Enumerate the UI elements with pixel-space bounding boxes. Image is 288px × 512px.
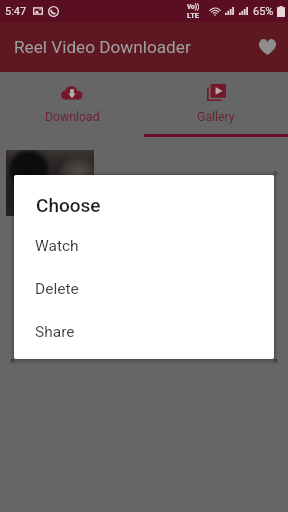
staticText: 65% (253, 5, 274, 18)
staticText: Reel Video Downloader (14, 37, 191, 57)
button[interactable]: Watch (14, 224, 274, 267)
staticText: Gallery (197, 110, 235, 124)
staticText: Choose (36, 194, 101, 216)
staticText: LTE (187, 11, 200, 20)
button[interactable]: Download (0, 72, 144, 137)
staticText: 5:47 (5, 5, 27, 18)
staticText: Watch (35, 237, 79, 255)
button[interactable]: Gallery (144, 72, 288, 137)
staticText: Share (35, 323, 75, 341)
button[interactable]: Delete (14, 267, 274, 310)
button[interactable]: Favorites (250, 30, 284, 64)
button[interactable]: Share (14, 310, 274, 353)
staticText: Vo)) (187, 3, 200, 11)
staticText: Delete (35, 280, 79, 298)
button[interactable] (6, 150, 94, 216)
staticText: Download (45, 110, 100, 124)
